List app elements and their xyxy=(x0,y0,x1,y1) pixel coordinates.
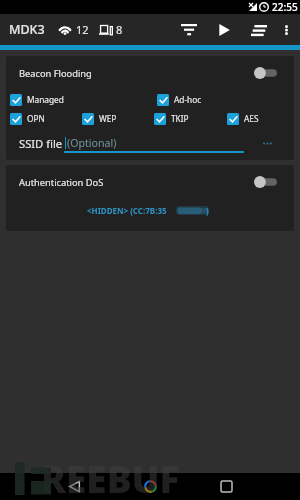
staticText: MDK3 xyxy=(9,21,45,38)
button[interactable]: Authentication DoS xyxy=(6,165,294,199)
staticText: TKIP xyxy=(171,113,189,124)
staticText: 8 xyxy=(116,22,123,37)
button[interactable]: Browse files xyxy=(254,133,280,153)
staticText: OPN xyxy=(27,113,45,124)
staticText: AES xyxy=(244,113,259,124)
button[interactable]: Filter xyxy=(167,14,211,45)
staticText: Authentication DoS xyxy=(19,176,104,189)
staticText: Beacon Flooding xyxy=(19,67,92,80)
staticText: Managed xyxy=(27,94,64,105)
staticText: WEP xyxy=(99,113,117,124)
staticText: ) xyxy=(206,205,209,216)
staticText: 12 xyxy=(76,22,89,37)
button[interactable]: (Optional) xyxy=(64,134,244,153)
button[interactable]: Ad-hoc xyxy=(157,90,202,109)
staticText: 22:55 xyxy=(272,0,298,14)
button[interactable]: Managed xyxy=(10,90,64,109)
staticText: SSID file xyxy=(19,136,63,151)
button[interactable]: More options xyxy=(271,14,300,45)
staticText: (Optional) xyxy=(67,136,117,150)
staticText: Ad-hoc xyxy=(174,94,202,105)
button[interactable]: WEP xyxy=(82,109,117,128)
button[interactable]: Start xyxy=(205,14,244,45)
button[interactable]: TKIP xyxy=(154,109,189,128)
button[interactable]: Home xyxy=(136,473,164,500)
staticText: <HIDDEN> (CC:7B:35 xyxy=(87,205,167,216)
staticText: REEBUF xyxy=(41,453,180,500)
button[interactable]: Sort xyxy=(237,14,281,45)
button[interactable]: Back xyxy=(60,473,88,500)
button[interactable]: Beacon Flooding xyxy=(6,56,294,90)
button[interactable]: Recent apps xyxy=(212,473,240,500)
button[interactable]: OPN xyxy=(10,109,45,128)
button[interactable]: AES xyxy=(227,109,259,128)
